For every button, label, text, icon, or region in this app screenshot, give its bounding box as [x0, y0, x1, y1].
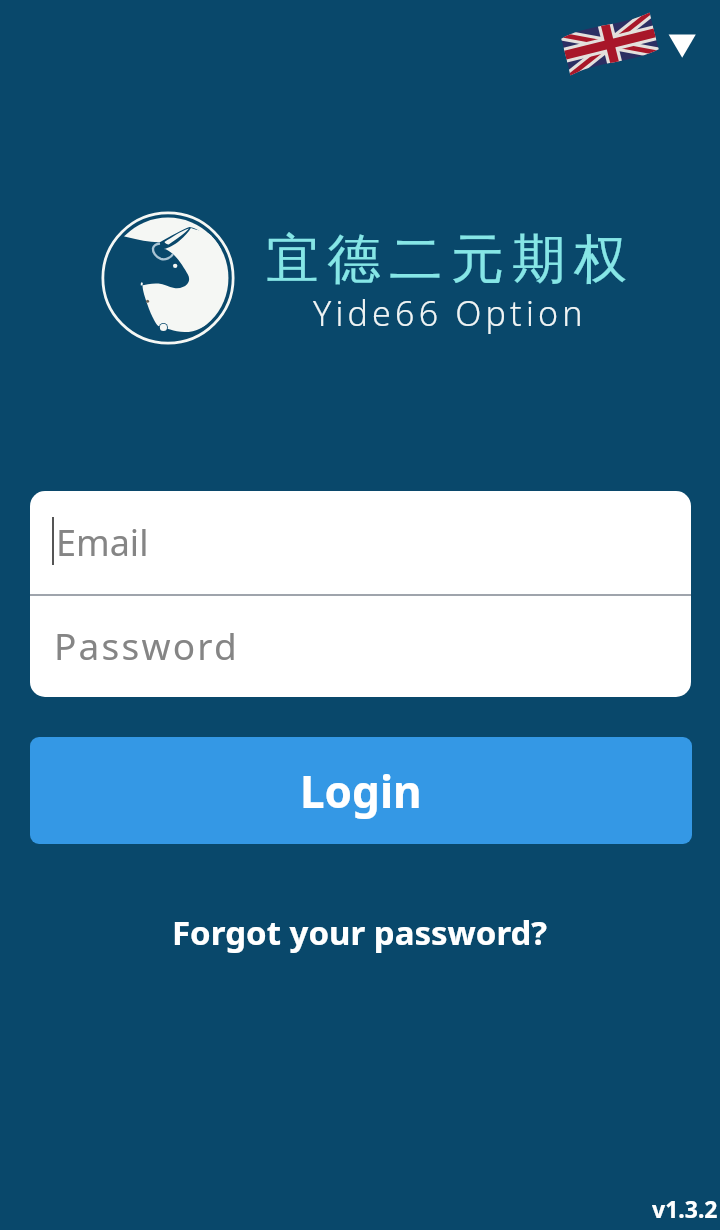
staticText: Password: [54, 620, 239, 670]
button[interactable]: Email: [30, 491, 691, 594]
staticText: Forgot your password?: [172, 910, 548, 955]
staticText: Login: [300, 761, 422, 821]
button[interactable]: Password: [30, 596, 691, 697]
staticText: v1.3.2: [652, 1193, 718, 1224]
staticText: Email: [56, 518, 149, 567]
button[interactable]: Forgot your password?: [162, 902, 558, 963]
staticText: 宜德二元期权: [266, 226, 636, 293]
button[interactable]: Login: [30, 737, 692, 844]
button[interactable]: Select language: [556, 8, 705, 80]
staticText: Yide66 Option: [313, 290, 587, 336]
